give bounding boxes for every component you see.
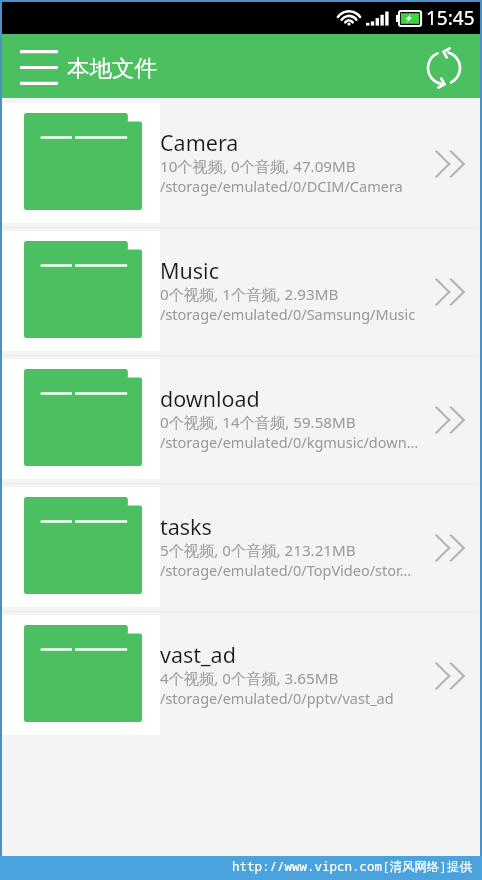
staticText: 0个视频, 1个音频, 2.93MB — [160, 284, 339, 305]
staticText: http://www.vipcn.com[清风网络]提供 — [232, 858, 473, 875]
staticText: 4个视频, 0个音频, 3.65MB — [160, 668, 339, 689]
staticText: Music — [160, 256, 219, 285]
button[interactable]: vast_ad — [0, 615, 482, 735]
staticText: /storage/emulated/0/Samsung/Music — [160, 304, 416, 324]
button[interactable]: Menu — [12, 43, 66, 91]
staticText: Camera — [160, 128, 239, 157]
button[interactable]: tasks — [0, 487, 482, 607]
staticText: /storage/emulated/0/TopVideo/stor… — [160, 560, 412, 580]
button[interactable]: Refresh — [420, 44, 468, 92]
staticText: /storage/emulated/0/pptv/vast_ad — [160, 688, 394, 708]
staticText: 15:45 — [426, 5, 475, 31]
button[interactable]: download — [0, 359, 482, 479]
staticText: /storage/emulated/0/kgmusic/down… — [160, 432, 419, 452]
button[interactable]: Music — [0, 231, 482, 351]
staticText: tasks — [160, 512, 212, 541]
staticText: /storage/emulated/0/DCIM/Camera — [160, 176, 403, 196]
staticText: 5个视频, 0个音频, 213.21MB — [160, 540, 356, 561]
staticText: 本地文件 — [67, 54, 157, 82]
staticText: 0个视频, 14个音频, 59.58MB — [160, 412, 356, 433]
staticText: download — [160, 384, 260, 413]
staticText: 10个视频, 0个音频, 47.09MB — [160, 156, 356, 177]
button[interactable]: Camera — [0, 103, 482, 223]
staticText: vast_ad — [160, 640, 236, 669]
